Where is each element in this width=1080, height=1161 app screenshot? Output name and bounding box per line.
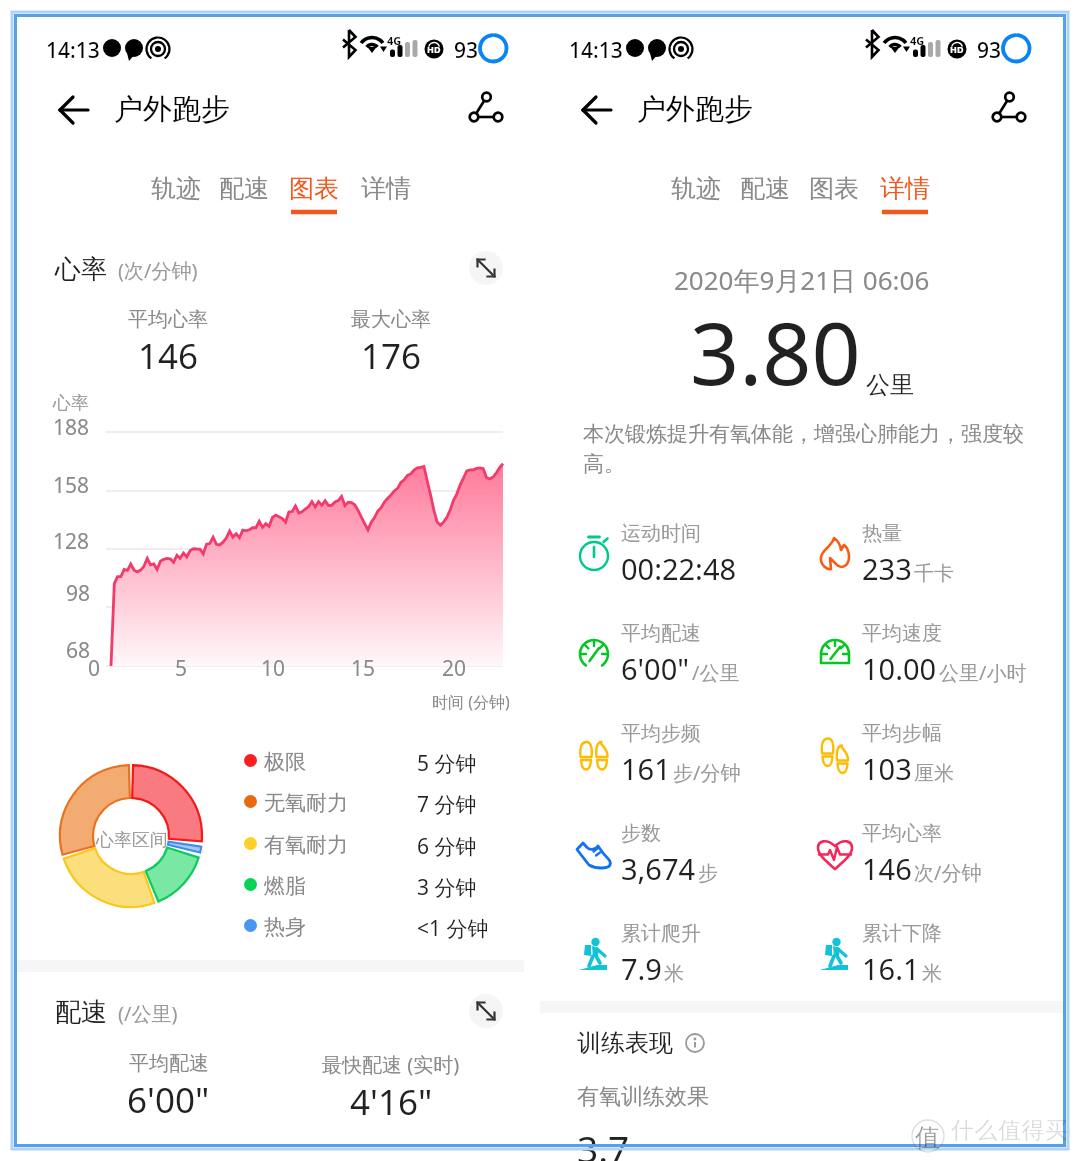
staticText: 233 [862, 549, 912, 588]
staticText: 图表 [809, 173, 859, 204]
staticText: 平均心率 [128, 307, 208, 332]
staticText: 6'00" [621, 649, 690, 688]
staticText: 厘米 [914, 761, 954, 786]
button[interactable]: 平均步频 [568, 728, 806, 818]
staticText: 158 [53, 471, 90, 500]
staticText: 配速 [55, 996, 107, 1029]
staticText: 10 [261, 654, 286, 683]
staticText: 14:13 [46, 36, 100, 65]
staticText: 7.9 [621, 949, 662, 988]
button[interactable]: 分享 [454, 79, 510, 135]
button[interactable]: 平均步幅 [809, 728, 1047, 818]
staticText: 图表 [289, 173, 339, 204]
button[interactable]: 热量 [809, 528, 1047, 618]
staticText: 配速 [740, 173, 790, 204]
staticText: 5 [175, 654, 188, 683]
staticText: 燃脂 [264, 873, 306, 899]
staticText: 15 [351, 654, 376, 683]
staticText: 心率 [53, 392, 89, 415]
staticText: 7 分钟 [417, 790, 477, 819]
staticText: 4G [387, 33, 402, 48]
button[interactable]: 累计爬升 [568, 928, 806, 1018]
staticText: 平均速度 [862, 621, 942, 646]
button[interactable]: 累计下降 [809, 928, 1047, 1018]
button[interactable]: 图表 [798, 161, 870, 231]
staticText: 轨迹 [151, 173, 201, 204]
staticText: 146 [862, 849, 912, 888]
staticText: HD [427, 43, 441, 55]
staticText: 0 [88, 654, 101, 683]
staticText: (次/分钟) [118, 257, 198, 284]
button[interactable]: 图表 [278, 161, 350, 231]
staticText: 有氧训练效果 [577, 1083, 709, 1111]
staticText: 无氧耐力 [264, 790, 348, 816]
staticText: 时间 (分钟) [432, 691, 510, 713]
staticText: 心率 [55, 253, 107, 286]
staticText: 00:22:48 [621, 549, 737, 588]
button[interactable]: 展开 [469, 994, 503, 1028]
staticText: 户外跑步 [637, 91, 753, 128]
button[interactable]: 平均配速 [568, 628, 806, 718]
staticText: 3.80 [690, 293, 861, 410]
button[interactable]: 分享 [977, 79, 1033, 135]
button[interactable]: 返回 [569, 82, 625, 138]
staticText: 最大心率 [351, 307, 431, 332]
staticText: 训练表现 [577, 1028, 673, 1058]
staticText: 详情 [361, 173, 411, 204]
staticText: 3 分钟 [417, 873, 477, 902]
staticText: 128 [53, 527, 90, 556]
staticText: 公里 [866, 370, 914, 400]
staticText: 公里/小时 [939, 659, 1027, 686]
staticText: 4G [910, 33, 925, 48]
button[interactable]: 详情 [350, 161, 422, 231]
button[interactable]: 步数 [568, 828, 806, 918]
button[interactable]: 展开 [469, 251, 503, 285]
button[interactable]: 运动时间 [568, 528, 806, 618]
staticText: 累计下降 [862, 921, 942, 946]
staticText: 68 [66, 636, 91, 665]
staticText: 极限 [264, 749, 306, 775]
button[interactable]: 详情 [869, 161, 941, 231]
staticText: 3,674 [621, 849, 696, 888]
staticText: 146 [138, 332, 199, 380]
button[interactable]: 配速 [208, 161, 280, 231]
staticText: 176 [361, 332, 422, 380]
staticText: 热身 [264, 914, 306, 940]
staticText: 米 [922, 961, 942, 986]
staticText: 4'16" [350, 1078, 433, 1126]
staticText: 93 [454, 36, 479, 65]
staticText: 最快配速 (实时) [322, 1051, 460, 1078]
button[interactable]: 轨迹 [660, 161, 732, 231]
staticText: 千卡 [914, 561, 954, 586]
staticText: /公里 [692, 659, 740, 686]
staticText: 6 分钟 [417, 832, 477, 861]
staticText: 步/分钟 [673, 759, 741, 786]
staticText: HD [950, 43, 964, 55]
staticText: 步数 [621, 821, 661, 846]
staticText: 累计爬升 [621, 921, 701, 946]
staticText: 16.1 [862, 949, 920, 988]
button[interactable]: 配速 [729, 161, 801, 231]
staticText: 10.00 [862, 649, 937, 688]
staticText: 平均配速 [129, 1051, 209, 1076]
button[interactable]: 平均速度 [809, 628, 1047, 718]
staticText: <1 分钟 [417, 914, 489, 943]
staticText: 步 [698, 861, 718, 886]
staticText: 98 [66, 579, 91, 608]
staticText: 米 [664, 961, 684, 986]
staticText: 平均步频 [621, 721, 701, 746]
staticText: 3.7 [577, 1123, 630, 1161]
staticText: 平均心率 [862, 821, 942, 846]
staticText: 平均步幅 [862, 721, 942, 746]
button[interactable]: 平均心率 [809, 828, 1047, 918]
staticText: 6'00" [127, 1076, 210, 1124]
staticText: 5 分钟 [417, 749, 477, 778]
staticText: 值 [915, 1122, 940, 1153]
staticText: 什么值得买 [951, 1116, 1069, 1145]
button[interactable]: 轨迹 [140, 161, 212, 231]
staticText: 轨迹 [671, 173, 721, 204]
staticText: 161 [621, 749, 671, 788]
staticText: 本次锻炼提升有氧体能，增强心肺能力，强度较高。 [583, 421, 1030, 478]
button[interactable]: 返回 [46, 82, 102, 138]
staticText: 热量 [862, 521, 902, 546]
